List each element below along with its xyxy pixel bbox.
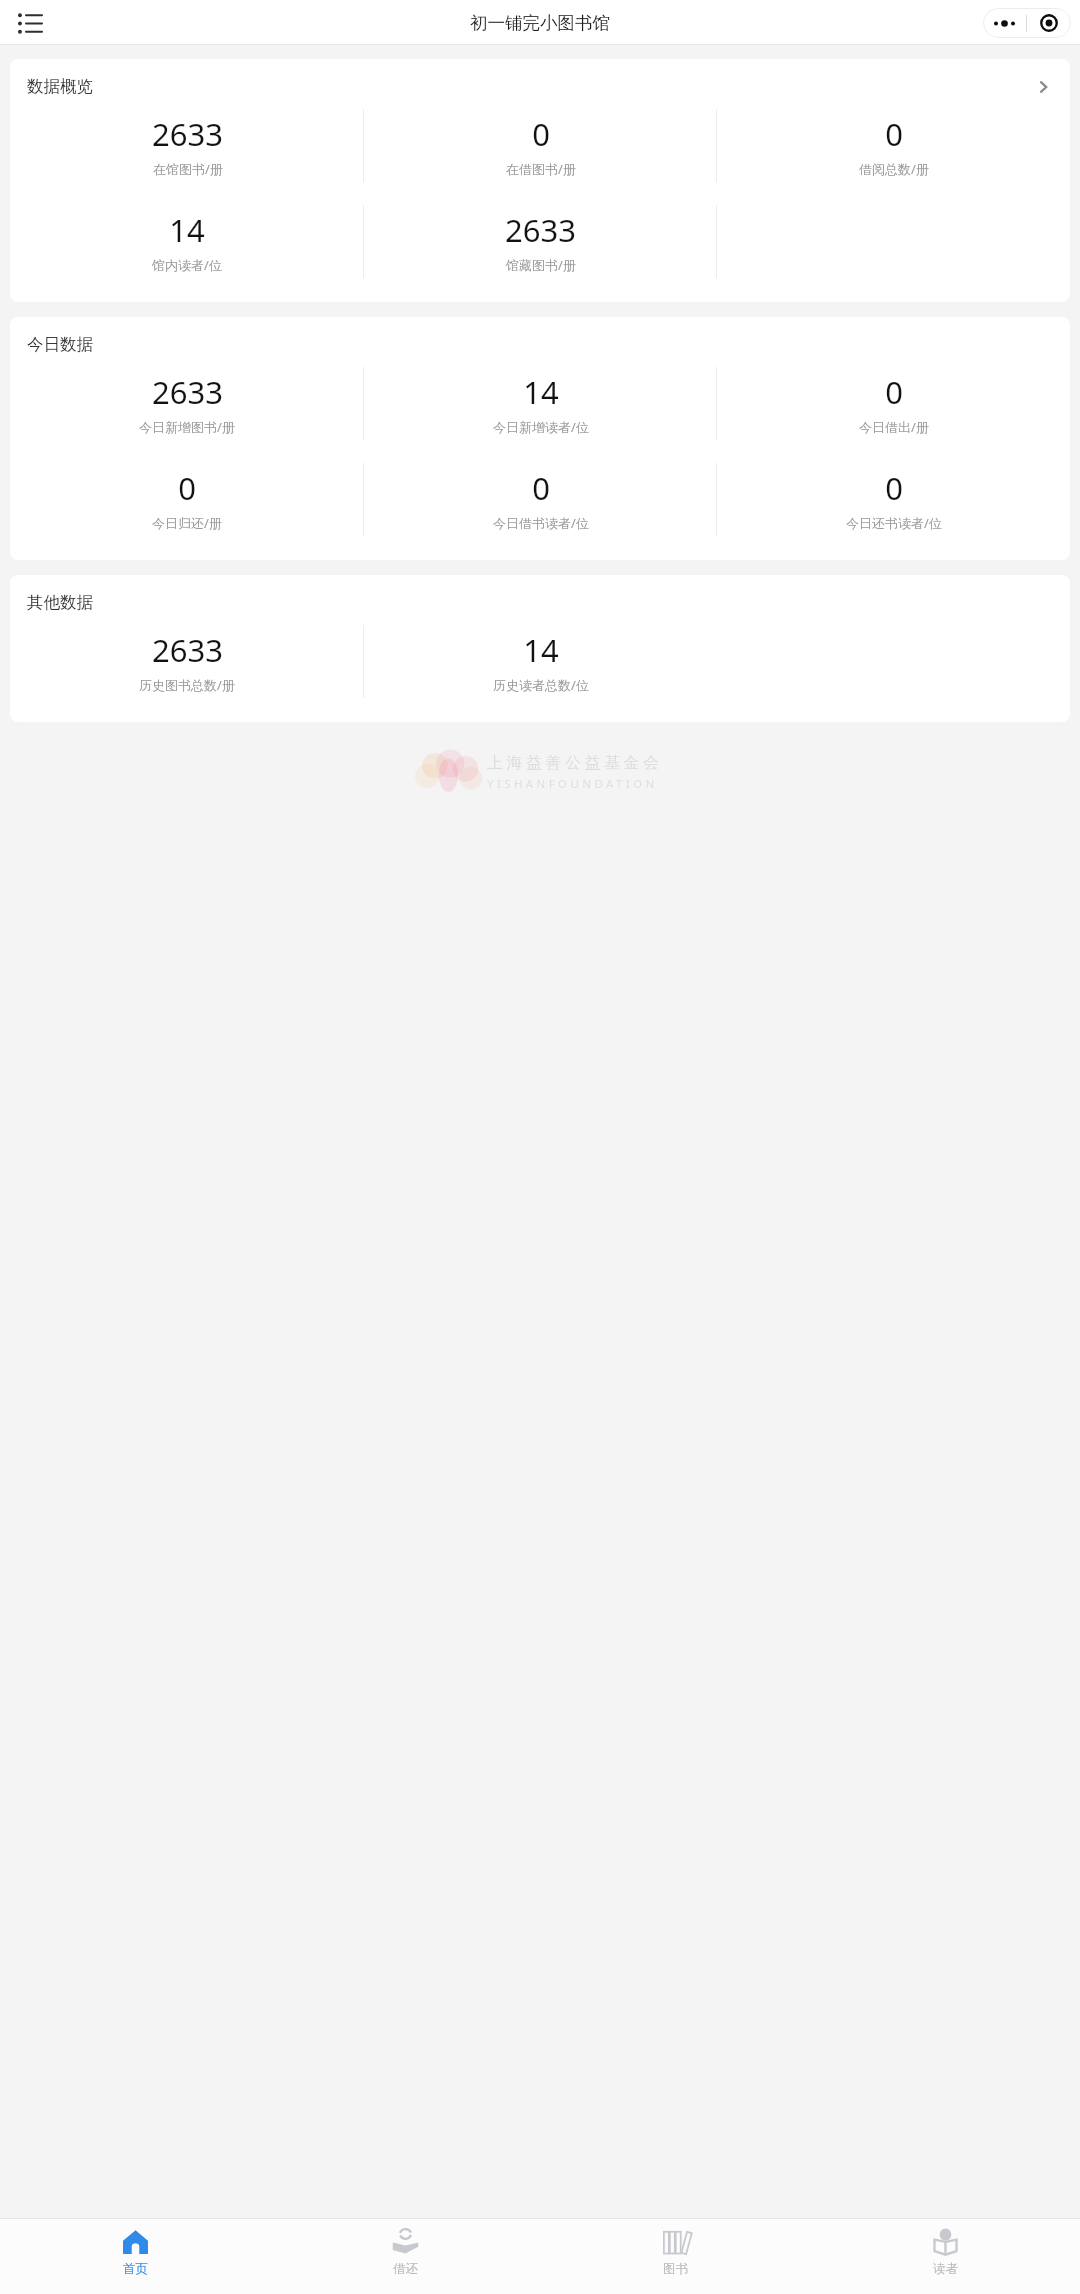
button[interactable]: 其他数据: [10, 575, 1070, 722]
staticText: 上海益善公益基金会: [487, 753, 663, 773]
staticText: 今日数据: [27, 334, 93, 355]
staticText: 图书: [663, 2261, 688, 2277]
button[interactable]: 数据概览: [10, 59, 1070, 302]
button[interactable]: 读者: [810, 2219, 1080, 2294]
staticText: 今日归还/册: [152, 514, 222, 532]
staticText: 2633: [152, 629, 223, 671]
button[interactable]: Close mini program: [1027, 8, 1071, 38]
button[interactable]: 首页: [0, 2219, 270, 2294]
staticText: 今日新增读者/位: [493, 418, 589, 436]
staticText: 首页: [123, 2261, 148, 2277]
staticText: 0: [885, 467, 903, 509]
staticText: 今日借书读者/位: [493, 514, 589, 532]
staticText: 14: [169, 209, 205, 251]
staticText: 0: [885, 113, 903, 155]
staticText: 读者: [933, 2261, 958, 2277]
staticText: 借还: [393, 2261, 418, 2277]
button[interactable]: More options: [983, 8, 1026, 38]
staticText: 今日借出/册: [859, 418, 929, 436]
staticText: 借阅总数/册: [859, 160, 929, 178]
staticText: 其他数据: [27, 592, 93, 613]
staticText: 馆藏图书/册: [506, 256, 576, 274]
staticText: 0: [178, 467, 196, 509]
staticText: 0: [532, 467, 550, 509]
staticText: 0: [885, 371, 903, 413]
staticText: 在馆图书/册: [153, 160, 223, 178]
staticText: 今日还书读者/位: [846, 514, 942, 532]
staticText: 馆内读者/位: [152, 256, 222, 274]
staticText: 历史图书总数/册: [139, 676, 235, 694]
button[interactable]: 借还: [270, 2219, 540, 2294]
staticText: 2633: [505, 209, 576, 251]
staticText: 在借图书/册: [506, 160, 576, 178]
staticText: 2633: [152, 113, 223, 155]
staticText: 初一铺完小图书馆: [470, 12, 610, 34]
staticText: 数据概览: [27, 76, 93, 97]
staticText: 0: [532, 113, 550, 155]
staticText: YISHANFOUNDATION: [487, 776, 658, 792]
staticText: 14: [523, 371, 559, 413]
button[interactable]: 图书: [540, 2219, 810, 2294]
staticText: 14: [523, 629, 559, 671]
staticText: 2633: [152, 371, 223, 413]
staticText: 今日新增图书/册: [139, 418, 235, 436]
staticText: 历史读者总数/位: [493, 676, 589, 694]
button[interactable]: 今日数据: [10, 317, 1070, 560]
button[interactable]: Menu: [8, 1, 52, 45]
